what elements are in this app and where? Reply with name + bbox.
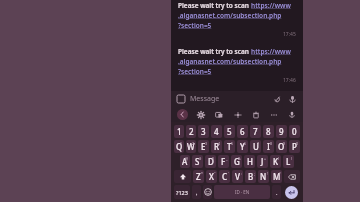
button[interactable]: ?123 [174, 185, 190, 199]
button[interactable]: Delete [250, 109, 261, 120]
button[interactable]: E [198, 140, 209, 153]
button[interactable]: Y [237, 140, 248, 153]
button[interactable]: C [219, 170, 230, 183]
staticText: I [267, 141, 270, 152]
staticText: ; [254, 171, 255, 176]
button[interactable]: L [283, 155, 294, 168]
staticText: $ [212, 156, 215, 161]
staticText: Please wait try to scan [178, 47, 251, 56]
button[interactable]: P [289, 140, 300, 153]
staticText: D [208, 156, 214, 167]
button[interactable]: 8 [263, 125, 274, 138]
button[interactable]: U [250, 140, 261, 153]
staticText: K [273, 156, 279, 167]
button[interactable]: T [224, 140, 235, 153]
button[interactable]: K [270, 155, 281, 168]
staticText: 3 [205, 141, 208, 146]
button[interactable]: Attach [273, 95, 282, 104]
staticText: 9 [283, 141, 286, 146]
button[interactable]: Settings [195, 109, 206, 120]
button[interactable]: W [186, 140, 196, 153]
staticText: # [199, 156, 202, 161]
button[interactable]: 2 [186, 125, 196, 138]
button[interactable]: Gallery [213, 109, 224, 120]
button[interactable]: 6 [237, 125, 248, 138]
staticText: - [252, 156, 254, 161]
staticText: E [201, 141, 206, 152]
button[interactable]: 1 [174, 125, 184, 138]
button[interactable]: ID · EN [214, 185, 270, 199]
staticText: P [292, 141, 297, 152]
button[interactable]: I [263, 140, 274, 153]
button[interactable]: Microphone [286, 109, 297, 120]
staticText: Y [240, 141, 245, 152]
staticText: 4 [218, 141, 221, 146]
staticText: 6 [240, 126, 245, 137]
button[interactable]: F [218, 155, 229, 168]
staticText: https://www [251, 1, 291, 10]
button[interactable]: H [244, 155, 255, 168]
staticText: 8 [266, 126, 271, 137]
button[interactable]: V [232, 170, 243, 183]
staticText: @ [185, 156, 189, 161]
staticText: J [261, 156, 264, 167]
button[interactable]: Voice message [288, 95, 297, 104]
button[interactable]: More [268, 109, 279, 120]
staticText: Z [196, 171, 201, 182]
button[interactable]: R [211, 140, 222, 153]
button[interactable]: Q [174, 140, 184, 153]
button[interactable]: 5 [224, 125, 235, 138]
button[interactable]: M [271, 170, 282, 183]
button[interactable]: Collapse [177, 109, 188, 120]
button[interactable]: D [205, 155, 216, 168]
staticText: 5 [227, 126, 232, 137]
staticText: N [260, 171, 267, 182]
button[interactable]: , [192, 185, 201, 199]
staticText: ?section=5 [178, 21, 212, 30]
button[interactable]: 0 [289, 125, 300, 138]
button[interactable]: Stickers [177, 95, 185, 103]
staticText: ! [267, 171, 268, 176]
staticText: ID · EN [235, 189, 250, 195]
button[interactable]: B [245, 170, 256, 183]
button[interactable]: 3 [198, 125, 209, 138]
staticText: 2 [189, 126, 194, 137]
staticText: G [234, 156, 240, 167]
staticText: * [201, 171, 203, 176]
button[interactable]: Tools [232, 109, 243, 120]
button[interactable]: Enter [285, 186, 298, 199]
button[interactable]: 4 [211, 125, 222, 138]
button[interactable]: Backspace [284, 170, 300, 183]
button[interactable]: G [231, 155, 242, 168]
staticText: H [247, 156, 253, 167]
button[interactable]: X [206, 170, 217, 183]
button[interactable]: 7 [250, 125, 261, 138]
button[interactable]: 9 [276, 125, 287, 138]
button[interactable]: Emoji [203, 185, 212, 199]
staticText: U [253, 141, 259, 152]
button[interactable]: . [272, 185, 281, 199]
staticText: W [187, 141, 195, 152]
staticText: X [209, 171, 214, 182]
staticText: _ [226, 156, 228, 161]
staticText: 2 [192, 141, 195, 146]
button[interactable]: J [257, 155, 268, 168]
staticText: Message [190, 94, 220, 104]
button[interactable]: N [258, 170, 269, 183]
button[interactable]: Z [193, 170, 204, 183]
staticText: 7 [257, 141, 260, 146]
button[interactable]: S [192, 155, 203, 168]
staticText: ? [279, 171, 281, 176]
staticText: 17:45 [283, 31, 296, 38]
staticText: O [278, 141, 285, 152]
staticText: Q [176, 141, 183, 152]
staticText: 0 [292, 126, 297, 137]
staticText: 9 [279, 126, 284, 137]
button[interactable]: A [180, 155, 190, 168]
button[interactable]: O [276, 140, 287, 153]
staticText: " [214, 171, 216, 176]
staticText: ' [228, 171, 229, 176]
staticText: T [227, 141, 232, 152]
button[interactable]: Shift [174, 170, 191, 183]
staticText: 1 [177, 126, 182, 137]
